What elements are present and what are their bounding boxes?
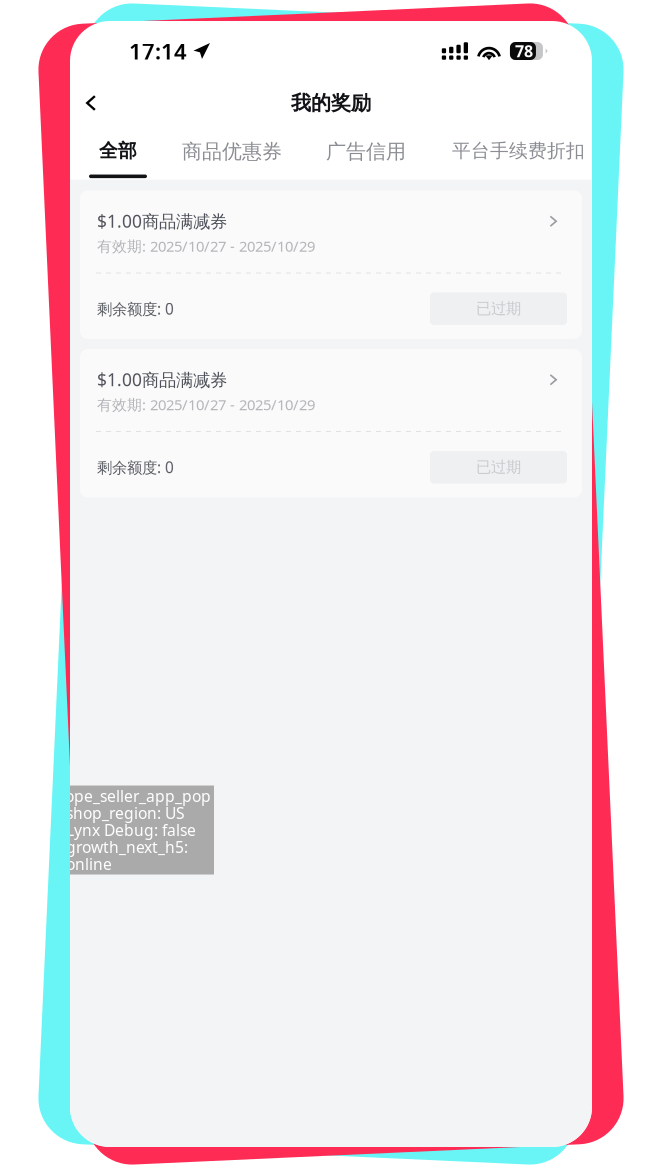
staticText: 有效期: 2025/10/27 - 2025/10/29 (97, 236, 315, 256)
staticText: 广告信用 (326, 139, 406, 164)
staticText: scope_seller_app_pop (51, 785, 211, 807)
staticText: 已过期 (476, 299, 521, 318)
staticText: $1.00商品满减券 (97, 209, 227, 233)
staticText: 剩余额度: 0 (97, 457, 174, 478)
button[interactable]: 已过期 (430, 451, 567, 483)
staticText: 有效期: 2025/10/27 - 2025/10/29 (97, 394, 315, 415)
staticText: 我的奖励 (291, 90, 371, 116)
staticText: 已过期 (476, 458, 521, 477)
staticText: growth_next_h5: (66, 836, 188, 858)
staticText: shop_region: US (66, 802, 185, 824)
button[interactable]: $1.00商品满减券 (80, 190, 582, 272)
button[interactable]: 广告信用 (326, 139, 406, 180)
button[interactable]: Back (70, 82, 112, 124)
staticText: 17:14 (129, 36, 187, 66)
staticText: 全部 (99, 139, 137, 162)
staticText: 剩余额度: 0 (97, 298, 174, 319)
button[interactable]: 平台手续费折扣 (452, 139, 585, 178)
staticText: 78 (515, 40, 533, 62)
staticText: 平台手续费折扣 (452, 139, 585, 162)
staticText: $1.00商品满减券 (97, 368, 227, 391)
button[interactable]: 已过期 (430, 292, 567, 325)
button[interactable]: 全部 (89, 139, 147, 178)
button[interactable]: 商品优惠券 (182, 139, 282, 180)
staticText: 商品优惠券 (182, 139, 282, 164)
staticText: Lynx Debug: false (66, 819, 196, 841)
staticText: online (66, 853, 112, 875)
button[interactable]: $1.00商品满减券 (80, 349, 582, 431)
